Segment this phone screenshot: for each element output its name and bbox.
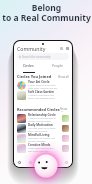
staticText: Recommended Circles bbox=[17, 107, 60, 112]
button[interactable]: Soft Class Garden bbox=[14, 90, 72, 100]
button[interactable]: Your Art Circle bbox=[14, 80, 72, 90]
staticText: Circles You Joined bbox=[17, 74, 52, 79]
button[interactable]: Search the community bbox=[17, 53, 69, 60]
staticText: People bbox=[52, 63, 63, 68]
staticText: Belong to a Real Community bbox=[2, 2, 91, 24]
button[interactable]: Circles bbox=[14, 63, 43, 73]
staticText: Soft Class Garden bbox=[28, 90, 55, 94]
staticText: Relationship Circle bbox=[28, 113, 56, 117]
staticText: Your daily wake-up to chase goals. This … bbox=[28, 127, 56, 133]
button[interactable]: Circles You Joined bbox=[14, 74, 72, 79]
staticText: Creative Minds bbox=[28, 143, 51, 147]
button[interactable]: Daily Motivation bbox=[14, 123, 72, 133]
staticText: Where ideas meet people who make them re… bbox=[28, 147, 54, 153]
staticText: Circles bbox=[23, 63, 34, 68]
button[interactable]: People bbox=[43, 63, 72, 73]
staticText: A place to share and grow in deeper, str… bbox=[28, 117, 56, 123]
button[interactable]: Relationship Circle bbox=[14, 113, 72, 123]
staticText: Mindful Living bbox=[28, 133, 50, 137]
staticText: Show all bbox=[60, 107, 69, 112]
staticText: A small group of artists who share ideas… bbox=[28, 84, 58, 90]
button[interactable]: Mindful Living bbox=[14, 133, 72, 143]
button[interactable]: Recommended Circles bbox=[14, 107, 72, 112]
staticText: A place to share plant care photos and g… bbox=[28, 94, 55, 100]
staticText: Show all bbox=[58, 75, 69, 79]
button[interactable]: Tab 1 bbox=[14, 157, 25, 167]
button[interactable]: Tab 5 bbox=[60, 157, 72, 167]
staticText: Your Art Circle bbox=[28, 80, 50, 84]
staticText: Daily Motivation bbox=[28, 123, 53, 127]
button[interactable]: Creative Minds bbox=[14, 143, 72, 153]
staticText: Search the community bbox=[22, 55, 51, 59]
staticText: Slow down, be present, and live with int… bbox=[28, 137, 56, 143]
button[interactable]: Tab 3 bbox=[36, 157, 48, 167]
button[interactable]: Tab 4 bbox=[48, 157, 60, 167]
button[interactable]: Tab 2 bbox=[25, 157, 36, 167]
staticText: Community bbox=[17, 45, 46, 52]
